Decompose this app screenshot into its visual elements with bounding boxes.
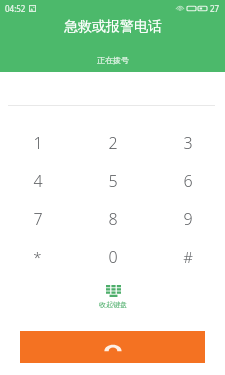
staticText: 6 <box>183 170 193 192</box>
button[interactable]: 8 <box>75 200 150 238</box>
staticText: 27 <box>210 3 220 14</box>
staticText: 1 <box>33 132 43 154</box>
button[interactable]: # <box>150 238 225 276</box>
staticText: 正在拨号 <box>97 55 129 65</box>
staticText: 0 <box>108 246 118 268</box>
button[interactable]: 9 <box>150 200 225 238</box>
button[interactable]: 3 <box>150 124 225 162</box>
staticText: 04:52 <box>5 3 26 14</box>
button[interactable]: * <box>0 238 75 276</box>
staticText: 8 <box>108 208 118 230</box>
staticText: 2 <box>108 132 118 154</box>
staticText: * <box>33 247 42 267</box>
button[interactable]: Hide keyboard <box>91 283 135 311</box>
button[interactable]: 5 <box>75 162 150 200</box>
staticText: 5 <box>108 170 118 192</box>
button[interactable]: 2 <box>75 124 150 162</box>
button[interactable]: 6 <box>150 162 225 200</box>
button[interactable]: Call <box>20 331 205 363</box>
staticText: 收起键盘 <box>99 300 127 309</box>
staticText: 4 <box>33 170 43 192</box>
button[interactable]: 0 <box>75 238 150 276</box>
button[interactable]: 7 <box>0 200 75 238</box>
button[interactable]: 1 <box>0 124 75 162</box>
staticText: # <box>183 247 193 267</box>
staticText: 急救或报警电话 <box>64 18 162 36</box>
staticText: 7 <box>33 208 43 230</box>
other: Hide keyboard <box>106 285 121 297</box>
staticText: 3 <box>183 132 193 154</box>
staticText: 9 <box>183 208 193 230</box>
button[interactable]: 4 <box>0 162 75 200</box>
